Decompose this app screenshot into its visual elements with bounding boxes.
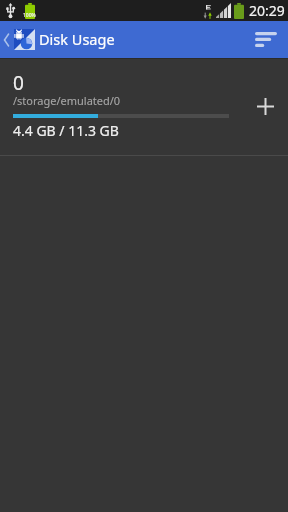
button[interactable]: 0 <box>0 59 288 155</box>
staticText: 20:29 <box>249 1 285 20</box>
button[interactable]: Add storage <box>242 83 288 129</box>
staticText: 0 <box>13 70 24 96</box>
button[interactable]: Navigate up <box>0 21 35 58</box>
staticText: Disk Usage <box>39 29 115 49</box>
staticText: 4.4 GB / 11.3 GB <box>13 121 119 140</box>
staticText: 100% <box>23 12 36 19</box>
button[interactable]: Sort <box>244 21 288 58</box>
staticText: /storage/emulated/0 <box>13 93 121 108</box>
